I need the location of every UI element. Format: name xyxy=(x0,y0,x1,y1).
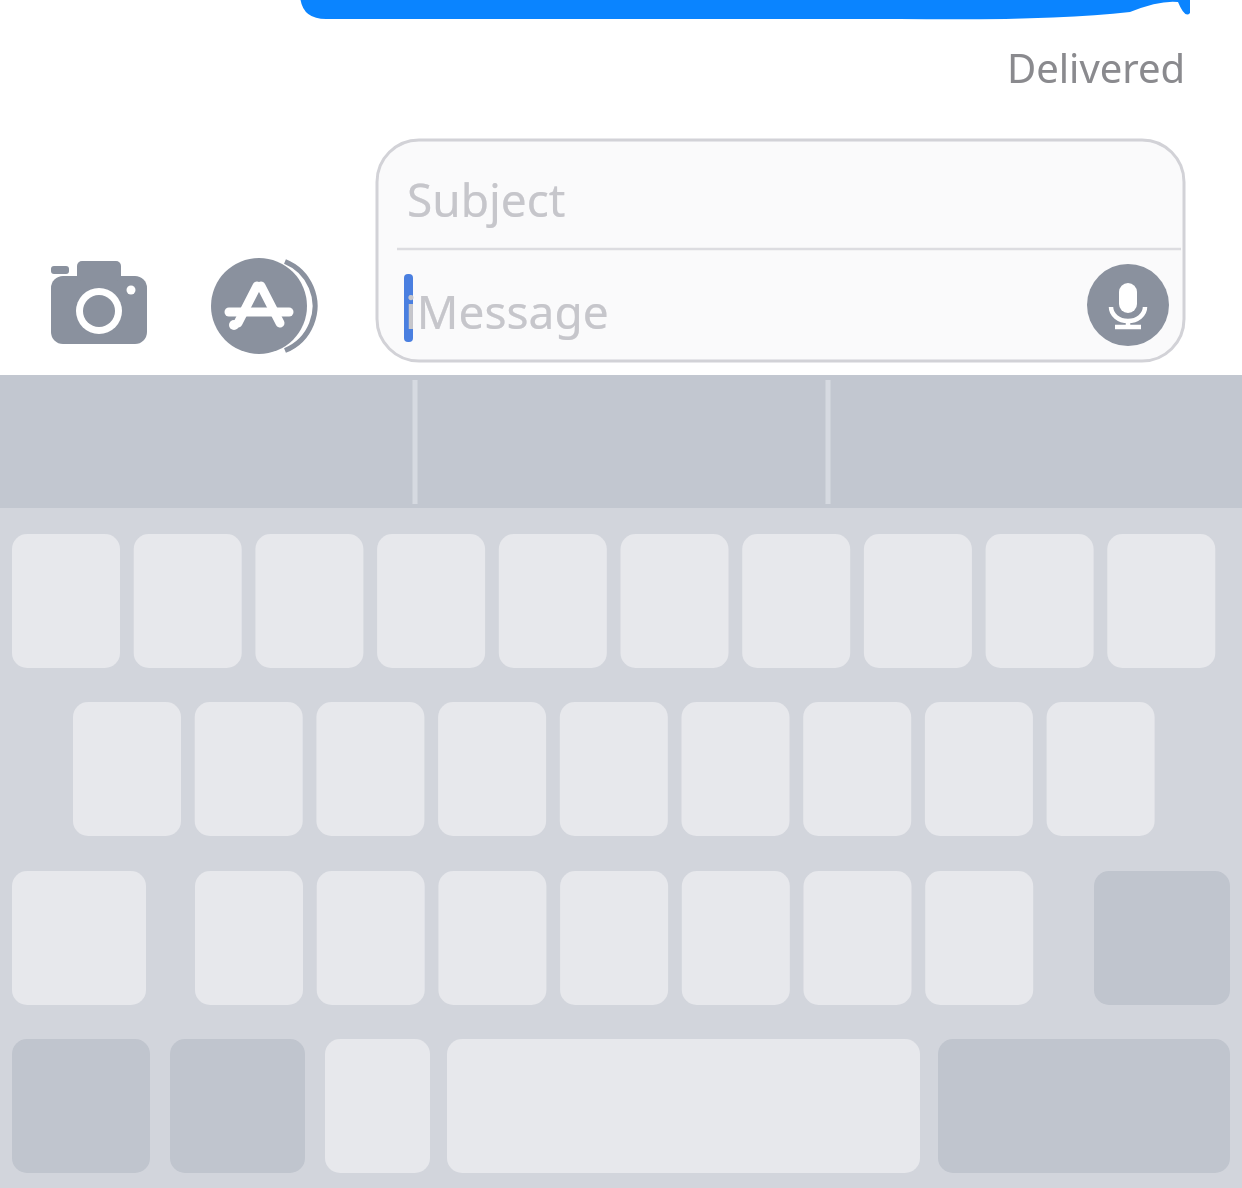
button[interactable]: Audio message xyxy=(1087,264,1169,346)
button[interactable]: Apps xyxy=(211,258,307,354)
button[interactable]: Message field xyxy=(377,140,1184,361)
button[interactable]: Camera xyxy=(51,258,147,354)
